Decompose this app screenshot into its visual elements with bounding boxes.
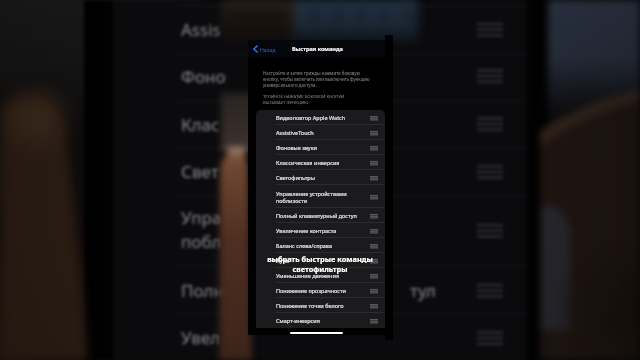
staticText: поблизости	[276, 197, 308, 204]
staticText: Фоновые звуки	[276, 144, 318, 151]
staticText: Быстрая команда	[292, 45, 343, 53]
button[interactable]: Назад	[253, 45, 276, 53]
staticText: Назад	[260, 46, 276, 53]
staticText: Светофильтры	[276, 174, 315, 181]
button[interactable]: Лупа	[256, 253, 385, 268]
button[interactable]: Фоновые звуки	[256, 140, 385, 155]
button[interactable]: Смарт-инверсия	[256, 313, 385, 328]
staticText: Упра	[181, 206, 222, 229]
staticText: Полный клавиатурный доступ	[276, 212, 357, 219]
staticText: Полн	[181, 279, 224, 302]
button[interactable]: Понижение прозрачности	[256, 283, 385, 298]
button[interactable]: Полный клавиатурный доступ	[256, 208, 385, 223]
staticText: Assis	[181, 18, 221, 41]
staticText: Управление устройствами	[276, 190, 347, 197]
staticText: побл	[181, 230, 222, 253]
button[interactable]: Классическая инверсия	[256, 155, 385, 170]
staticText: Уменьшение движения	[276, 272, 340, 279]
staticText: Баланс слева/справа	[276, 242, 333, 249]
staticText: Увел	[181, 326, 221, 349]
button[interactable]: AssistiveTouch	[256, 125, 385, 140]
staticText: Классическая инверсия	[276, 159, 340, 166]
staticText: Клас	[181, 113, 220, 136]
staticText: Увеличение контраста	[276, 227, 337, 234]
staticText: Свет	[181, 160, 219, 183]
button[interactable]: Баланс слева/справа	[256, 238, 385, 253]
staticText: выбрать быстрые команды	[267, 254, 373, 264]
staticText: Понижение точки белого	[276, 302, 344, 309]
staticText: ТРОЙНОЕ НАЖАТИЕ БОКОВОЙ КНОПКИ ВЫЗЫВАЕТ …	[263, 94, 355, 106]
button[interactable]: Управление устройствами	[256, 185, 385, 208]
staticText: Настройте и затем трижды нажмите боковую…	[263, 70, 370, 88]
staticText: тул	[410, 279, 436, 302]
button[interactable]: Светофильтры	[256, 170, 385, 185]
staticText: Лупа	[276, 257, 290, 264]
staticText: Фоно	[181, 65, 226, 88]
staticText: Понижение прозрачности	[276, 287, 347, 294]
staticText: Видеоповтор Apple Watch	[276, 114, 346, 121]
staticText: светофильтры	[292, 264, 348, 274]
button[interactable]: Видеоповтор Apple Watch	[256, 110, 385, 125]
button[interactable]: Понижение точки белого	[256, 298, 385, 313]
button[interactable]: Увеличение контраста	[256, 223, 385, 238]
button[interactable]: Уменьшение движения	[256, 268, 385, 283]
staticText: AssistiveTouch	[276, 129, 314, 136]
staticText: Смарт-инверсия	[276, 317, 320, 324]
